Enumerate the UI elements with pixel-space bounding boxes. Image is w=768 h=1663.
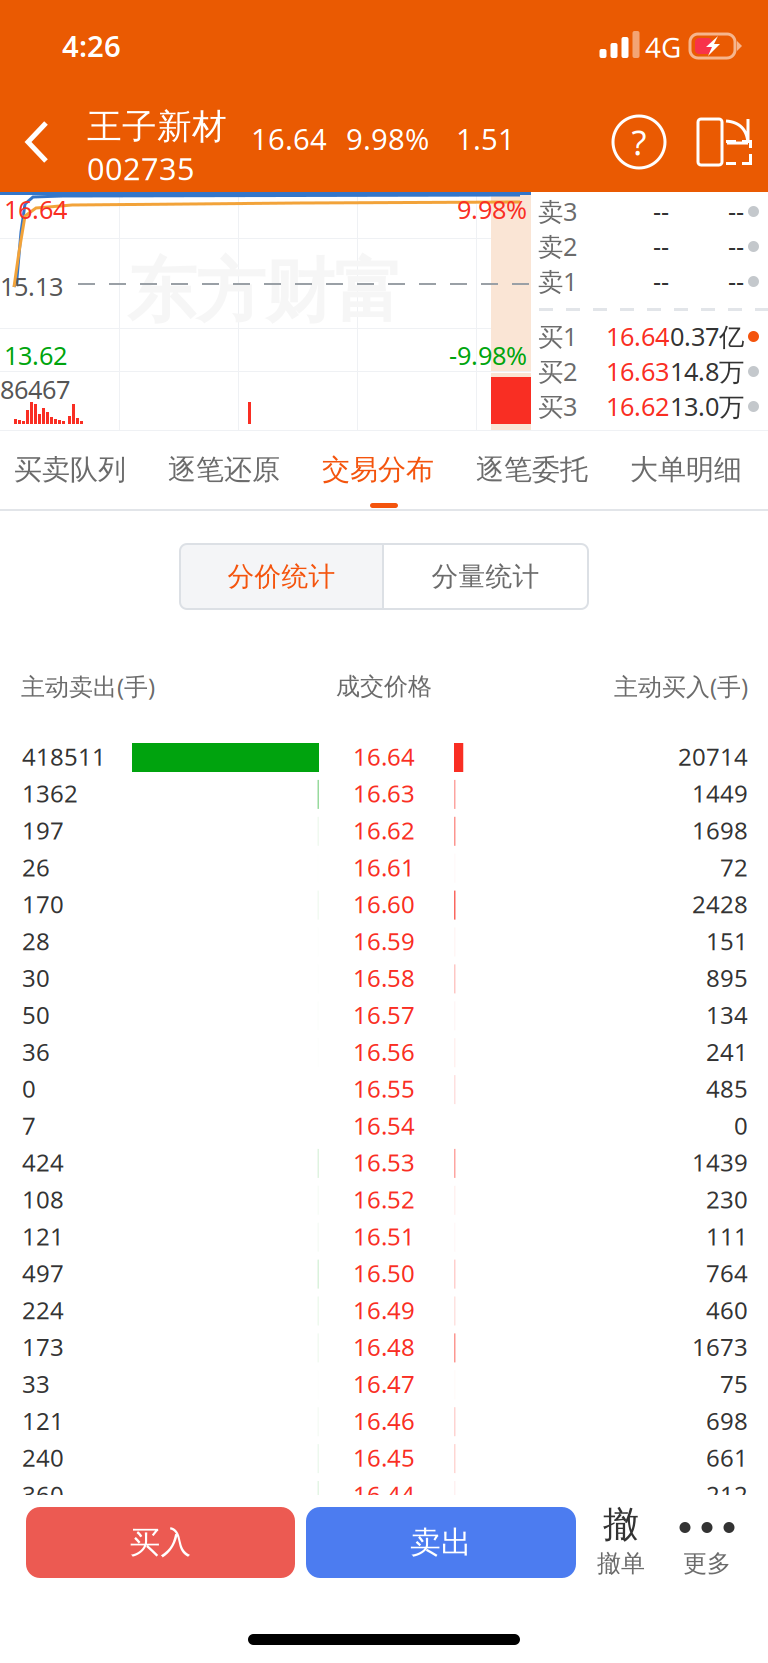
staticText: 16.53 xyxy=(353,1146,415,1178)
button[interactable]: 分价统计 xyxy=(180,544,383,609)
staticText: 16.63 xyxy=(353,777,415,809)
staticText: -9.98% xyxy=(449,338,527,372)
staticText: 成交价格 xyxy=(336,672,432,701)
staticText: 交易分布 xyxy=(322,453,434,487)
button[interactable]: 买卖队列 xyxy=(14,431,144,509)
staticText: 764 xyxy=(706,1257,748,1289)
staticText: 212 xyxy=(706,1478,748,1510)
staticText: 16.46 xyxy=(353,1405,415,1437)
staticText: 逐笔委托 xyxy=(476,453,588,487)
staticText: 14.8万 xyxy=(670,354,744,388)
staticText: 1673 xyxy=(692,1331,748,1363)
button[interactable]: 撤 xyxy=(578,1495,664,1589)
button[interactable]: 逐笔委托 xyxy=(476,431,606,509)
staticText: 121 xyxy=(22,1405,64,1437)
staticText: 16.59 xyxy=(353,925,415,957)
button[interactable]: 逐笔还原 xyxy=(168,431,298,509)
staticText: -- xyxy=(653,264,669,298)
staticText: 240 xyxy=(22,1442,64,1473)
staticText: 224 xyxy=(22,1294,64,1326)
staticText: 241 xyxy=(706,1036,748,1068)
button[interactable]: Picture in picture xyxy=(684,92,768,192)
button[interactable]: Help xyxy=(594,92,684,192)
staticText: 16.64 xyxy=(4,192,67,226)
staticText: 0 xyxy=(22,1073,36,1104)
staticText: 895 xyxy=(706,962,748,994)
staticText: 002735 xyxy=(87,148,195,189)
staticText: 大单明细 xyxy=(630,453,742,487)
staticText: 108 xyxy=(22,1183,64,1215)
staticText: 买入 xyxy=(129,1524,191,1561)
button[interactable]: Back xyxy=(0,92,74,192)
staticText: 分价统计 xyxy=(227,560,335,593)
staticText: 卖出 xyxy=(410,1524,472,1561)
staticText: 72 xyxy=(720,851,748,883)
staticText: -- xyxy=(728,264,744,298)
staticText: 16.45 xyxy=(353,1442,415,1473)
staticText: 16.64 xyxy=(353,740,415,772)
staticText: 16.49 xyxy=(353,1294,415,1326)
button[interactable]: 分量统计 xyxy=(383,544,588,609)
staticText: 151 xyxy=(706,925,748,957)
staticText: 497 xyxy=(22,1257,64,1289)
staticText: 13.62 xyxy=(4,338,67,372)
staticText: 13.0万 xyxy=(670,389,744,423)
staticText: 485 xyxy=(706,1073,748,1104)
staticText: 买1 xyxy=(538,319,577,353)
staticText: 卖3 xyxy=(538,194,577,228)
staticText: 主动卖出(手) xyxy=(21,670,155,702)
staticText: ? xyxy=(631,119,646,165)
staticText: 16.56 xyxy=(353,1036,415,1068)
staticText: 王子新材 xyxy=(87,105,227,148)
staticText: 36 xyxy=(22,1036,50,1068)
staticText: 0.37亿 xyxy=(670,319,744,353)
staticText: 买2 xyxy=(538,354,577,388)
staticText: 9.98% xyxy=(457,192,527,226)
staticText: 9.98% xyxy=(346,119,429,158)
staticText: 16.51 xyxy=(353,1220,415,1252)
staticText: 16.47 xyxy=(353,1368,415,1400)
staticText: -- xyxy=(653,194,669,228)
button[interactable]: 大单明细 xyxy=(630,431,760,509)
staticText: 16.57 xyxy=(353,999,415,1031)
staticText: 75 xyxy=(720,1368,748,1400)
staticText: 28 xyxy=(22,925,50,957)
button[interactable]: 更多 xyxy=(664,1495,750,1589)
staticText: 16.50 xyxy=(353,1257,415,1289)
staticText: 197 xyxy=(22,814,64,846)
staticText: 16.62 xyxy=(606,389,669,423)
staticText: 424 xyxy=(22,1146,64,1178)
staticText: 0 xyxy=(734,1109,748,1141)
button[interactable]: 卖出 xyxy=(306,1507,576,1578)
staticText: 698 xyxy=(706,1405,748,1437)
staticText: 230 xyxy=(706,1183,748,1215)
staticText: 卖1 xyxy=(538,264,577,298)
staticText: 16.48 xyxy=(353,1331,415,1363)
staticText: 50 xyxy=(22,999,50,1031)
staticText: 2428 xyxy=(692,888,748,920)
staticText: 170 xyxy=(22,888,64,920)
staticText: 86467 xyxy=(0,372,70,406)
staticText: 16.63 xyxy=(606,354,669,388)
staticText: 26 xyxy=(22,851,50,883)
staticText: 买3 xyxy=(538,389,577,423)
staticText: 1.51 xyxy=(456,119,515,158)
staticText: 418511 xyxy=(22,740,106,772)
staticText: 16.44 xyxy=(353,1478,415,1510)
button[interactable]: 买入 xyxy=(26,1507,295,1578)
staticText: 1439 xyxy=(692,1146,748,1178)
staticText: 16.52 xyxy=(353,1183,415,1215)
staticText: 4G xyxy=(645,28,681,65)
staticText: 撤单 xyxy=(597,1549,645,1578)
staticText: 7 xyxy=(22,1109,36,1141)
staticText: 1698 xyxy=(692,814,748,846)
staticText: 1362 xyxy=(22,777,78,809)
staticText: 16.58 xyxy=(353,962,415,994)
staticText: 更多 xyxy=(683,1549,731,1578)
staticText: 主动买入(手) xyxy=(614,670,748,702)
staticText: 16.54 xyxy=(353,1109,415,1141)
staticText: -- xyxy=(728,194,744,228)
staticText: 15.13 xyxy=(0,269,63,303)
button[interactable]: 交易分布 xyxy=(322,431,452,509)
staticText: 买卖队列 xyxy=(14,453,126,487)
